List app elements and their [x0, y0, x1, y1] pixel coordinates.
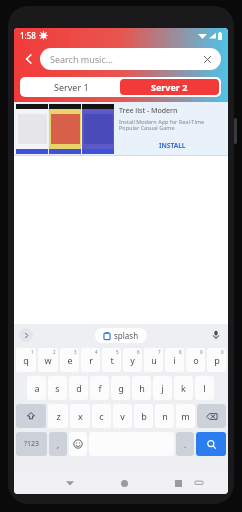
button[interactable]: u — [144, 348, 163, 372]
button[interactable]: i — [165, 348, 184, 372]
staticText: f — [98, 382, 102, 394]
button[interactable]: Server 2 — [120, 79, 219, 95]
button[interactable]: n — [155, 404, 174, 428]
button[interactable]: Search music... — [40, 48, 221, 70]
button[interactable]: t — [102, 348, 121, 372]
button[interactable]: g — [111, 376, 130, 400]
staticText: k — [181, 382, 186, 394]
staticText: 0 — [221, 349, 224, 355]
staticText: 9 — [200, 349, 203, 355]
staticText: Install Modern App for Real-Time Popular… — [119, 118, 205, 132]
button[interactable]: . — [176, 432, 194, 456]
button[interactable]: a — [27, 376, 46, 400]
staticText: u — [151, 354, 157, 366]
staticText: v — [120, 410, 125, 422]
button[interactable]: r — [81, 348, 100, 372]
button[interactable]: l — [195, 376, 214, 400]
button[interactable]: w — [38, 348, 58, 372]
staticText: ?123 — [24, 439, 40, 449]
staticText: t — [110, 354, 114, 366]
button[interactable]: Recents — [170, 475, 186, 491]
staticText: Server 1 — [54, 81, 89, 93]
button[interactable]: Server 1 — [22, 79, 120, 95]
staticText: q — [23, 354, 29, 366]
button[interactable]: m — [176, 404, 195, 428]
button[interactable]: f — [90, 376, 109, 400]
staticText: Tree list - Modern — [119, 106, 178, 116]
staticText: 5 — [116, 349, 119, 355]
staticText: Server 2 — [151, 81, 188, 93]
button[interactable]: INSTALL — [151, 140, 194, 151]
staticText: z — [56, 410, 61, 422]
staticText: 3 — [74, 349, 77, 355]
staticText: INSTALL — [159, 141, 186, 150]
staticText: , — [57, 439, 60, 450]
staticText: i — [173, 354, 176, 366]
button[interactable]: p — [207, 348, 226, 372]
button[interactable]: Clear — [201, 53, 214, 66]
staticText: y — [130, 354, 135, 366]
staticText: m — [181, 410, 190, 422]
button[interactable]: Shift — [16, 404, 46, 428]
button[interactable]: Voice input — [209, 328, 223, 342]
staticText: s — [55, 382, 60, 394]
staticText: 1 — [31, 349, 34, 355]
button[interactable]: Expand toolbar — [19, 328, 33, 342]
button[interactable]: Backspace — [197, 404, 226, 428]
staticText: x — [78, 410, 83, 422]
button[interactable]: o — [186, 348, 205, 372]
staticText: 7 — [158, 349, 161, 355]
staticText: o — [193, 354, 199, 366]
staticText: h — [139, 382, 145, 394]
button[interactable]: Home — [116, 475, 132, 491]
staticText: 6 — [137, 349, 140, 355]
button[interactable]: q — [16, 348, 36, 372]
button[interactable]: d — [69, 376, 88, 400]
button[interactable]: Switch keyboard — [192, 476, 206, 490]
button[interactable]: splash — [95, 328, 147, 343]
button[interactable]: x — [70, 404, 90, 428]
staticText: splash — [114, 330, 139, 341]
staticText: e — [67, 354, 73, 366]
staticText: . — [184, 439, 187, 450]
staticText: b — [141, 410, 147, 422]
button[interactable]: Hide keyboard — [62, 475, 78, 491]
staticText: j — [161, 382, 164, 394]
staticText: a — [34, 382, 40, 394]
button[interactable]: ?123 — [16, 432, 47, 456]
staticText: 4 — [95, 349, 98, 355]
staticText: g — [118, 382, 124, 394]
button[interactable]: h — [132, 376, 151, 400]
staticText: d — [76, 382, 82, 394]
staticText: p — [214, 354, 220, 366]
button[interactable]: Back — [18, 48, 40, 70]
staticText: 8 — [179, 349, 182, 355]
button[interactable]: y — [123, 348, 142, 372]
button[interactable]: j — [153, 376, 172, 400]
staticText: Search music... — [50, 53, 113, 65]
button[interactable]: Advertisement — [14, 102, 228, 156]
staticText: c — [99, 410, 104, 422]
button[interactable]: s — [48, 376, 67, 400]
button[interactable]: k — [174, 376, 193, 400]
button[interactable]: Emoji — [69, 432, 87, 456]
staticText: w — [44, 354, 52, 366]
button[interactable]: Search — [196, 432, 226, 456]
button[interactable]: v — [113, 404, 132, 428]
staticText: l — [203, 382, 206, 394]
staticText: r — [89, 354, 93, 366]
staticText: n — [162, 410, 168, 422]
button[interactable]: c — [92, 404, 111, 428]
button[interactable]: b — [134, 404, 153, 428]
button[interactable]: e — [60, 348, 79, 372]
button[interactable]: , — [49, 432, 67, 456]
staticText: 1:58 — [20, 30, 36, 41]
button[interactable]: z — [48, 404, 68, 428]
staticText: 2 — [53, 349, 56, 355]
